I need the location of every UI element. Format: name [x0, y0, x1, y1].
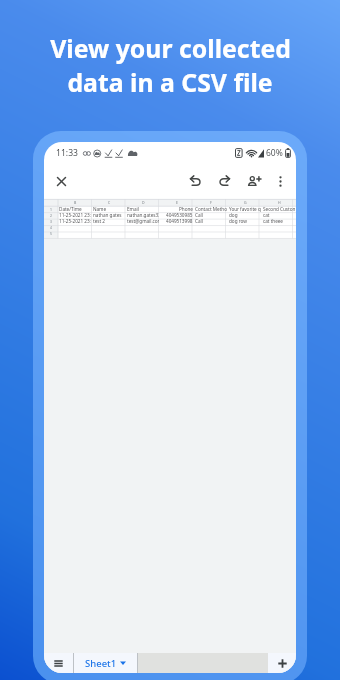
button[interactable]: Undo: [184, 170, 206, 192]
staticText: Call: [195, 212, 203, 218]
staticText: Phone: [179, 206, 193, 212]
staticText: data in a CSV file: [67, 65, 273, 99]
staticText: B: [74, 200, 77, 205]
staticText: cat: [263, 212, 270, 218]
staticText: test 2: [93, 218, 105, 224]
staticText: View your collected: [50, 31, 291, 65]
staticText: 3: [50, 219, 52, 224]
staticText: test@gmail.com: [127, 218, 159, 224]
button[interactable]: Redo: [214, 170, 236, 192]
staticText: Date/Time: [59, 206, 82, 212]
staticText: 2: [50, 213, 52, 218]
staticText: 11-25-2021 23:3: [59, 218, 91, 224]
staticText: Contact Method: [195, 206, 227, 212]
staticText: cat theee: [263, 218, 283, 224]
staticText: C: [108, 200, 111, 205]
staticText: Sheet1: [85, 657, 117, 670]
staticText: Name: [93, 206, 107, 212]
staticText: Second Custom que: [263, 206, 295, 212]
staticText: 1: [50, 207, 52, 212]
staticText: 4049513998: [166, 218, 193, 224]
button[interactable]: Sheet1: [74, 653, 137, 673]
staticText: D: [142, 200, 145, 205]
staticText: Your favorite que: [229, 206, 261, 212]
staticText: 5: [50, 231, 52, 236]
staticText: Call: [195, 218, 203, 224]
staticText: G: [244, 200, 247, 205]
button[interactable]: Add sheet: [268, 653, 296, 673]
staticText: H: [278, 200, 281, 205]
staticText: F: [210, 200, 212, 205]
button[interactable]: All sheets: [44, 653, 73, 673]
staticText: E: [176, 200, 178, 205]
staticText: nathan.gates33@: [127, 212, 159, 218]
staticText: 11-25-2021 23:1: [59, 212, 91, 218]
staticText: 4: [50, 225, 52, 230]
button[interactable]: Share: [243, 170, 265, 192]
button[interactable]: More options: [269, 170, 291, 192]
button[interactable]: Close: [50, 170, 72, 192]
staticText: 4049530985: [166, 212, 193, 218]
staticText: 11:33: [56, 147, 78, 159]
staticText: 60%: [266, 147, 283, 159]
staticText: nathan gates: [93, 212, 122, 218]
staticText: Email: [127, 206, 139, 212]
staticText: dog row: [229, 218, 247, 224]
staticText: dog: [229, 212, 238, 218]
